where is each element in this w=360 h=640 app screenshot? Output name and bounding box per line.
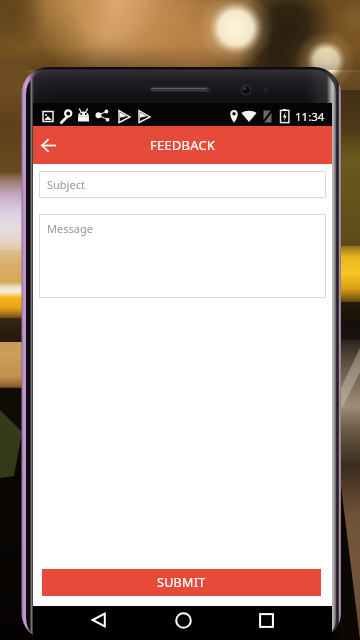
staticText: 11:34: [295, 109, 325, 125]
button[interactable]: Home: [167, 606, 199, 640]
button[interactable]: Subject: [39, 171, 326, 198]
staticText: Subject: [47, 177, 85, 192]
button[interactable]: Back: [83, 606, 115, 640]
button[interactable]: Recent apps: [250, 606, 282, 640]
button[interactable]: Back: [33, 130, 64, 161]
button[interactable]: Message: [39, 214, 326, 298]
staticText: FEEDBACK: [150, 136, 216, 154]
staticText: Message: [47, 221, 93, 236]
button[interactable]: SUBMIT: [42, 569, 321, 596]
staticText: SUBMIT: [157, 574, 206, 591]
